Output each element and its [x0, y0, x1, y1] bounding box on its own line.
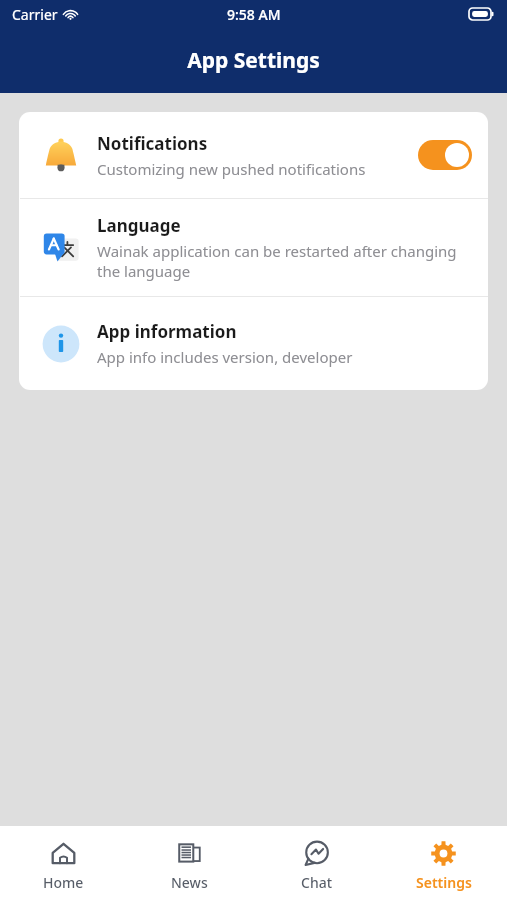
staticText: App info includes version, developer [97, 347, 353, 367]
staticText: Language [97, 214, 181, 237]
staticText: Home [43, 873, 84, 892]
staticText: Settings [416, 873, 472, 892]
button[interactable]: Notifications [19, 112, 488, 198]
button[interactable]: Chat [253, 836, 380, 896]
staticText: App information [97, 320, 237, 343]
button[interactable]: Settings [380, 836, 507, 896]
staticText: Chat [301, 873, 333, 892]
button[interactable]: App information [19, 297, 488, 390]
staticText: News [171, 873, 208, 892]
staticText: Carrier [12, 5, 58, 24]
staticText: Notifications [97, 132, 208, 155]
button[interactable]: Language [19, 199, 488, 296]
staticText: 9:58 AM [227, 5, 281, 24]
staticText: Customizing new pushed notifications [97, 159, 366, 179]
button[interactable]: Home [0, 836, 126, 896]
button[interactable]: Toggle notifications [418, 140, 472, 170]
staticText: Wainak application can be restarted afte… [97, 241, 472, 281]
staticText: App Settings [187, 46, 320, 75]
button[interactable]: News [126, 836, 253, 896]
